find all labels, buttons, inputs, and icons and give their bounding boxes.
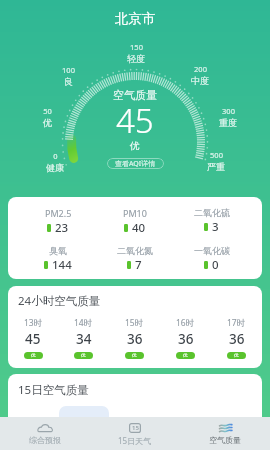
staticText: 16时 bbox=[176, 317, 195, 329]
staticText: 一氧化碳 bbox=[194, 245, 230, 256]
button[interactable]: 综合预报 bbox=[0, 417, 90, 450]
staticText: 17时 bbox=[227, 317, 246, 329]
staticText: 36 bbox=[127, 330, 143, 348]
staticText: 40 bbox=[132, 220, 146, 236]
staticText: 15日空气质量 bbox=[18, 382, 89, 398]
staticText: 13时 bbox=[24, 317, 43, 329]
staticText: 23 bbox=[55, 220, 69, 236]
staticText: 3 bbox=[212, 219, 219, 235]
staticText: 臭氧 bbox=[49, 245, 67, 256]
staticText: 150 bbox=[130, 42, 143, 52]
staticText: 优 bbox=[130, 140, 140, 152]
button[interactable]: 空气质量 bbox=[180, 417, 270, 450]
button[interactable]: 17时 bbox=[211, 317, 262, 359]
staticText: 500 bbox=[210, 150, 223, 160]
staticText: 综合预报 bbox=[29, 435, 61, 445]
staticText: 144 bbox=[52, 257, 72, 273]
staticText: 0 bbox=[212, 257, 219, 273]
staticText: 轻度 bbox=[127, 53, 145, 64]
staticText: 15 bbox=[132, 424, 139, 432]
staticText: 45 bbox=[116, 98, 154, 143]
staticText: 优 bbox=[132, 353, 137, 359]
staticText: 空气质量 bbox=[113, 88, 157, 102]
staticText: 空气质量 bbox=[209, 435, 241, 445]
staticText: 14时 bbox=[74, 317, 93, 329]
staticText: 严重 bbox=[207, 161, 225, 172]
staticText: 50 bbox=[43, 106, 52, 116]
button[interactable]: 15日天气 bbox=[90, 417, 180, 450]
staticText: 300 bbox=[222, 106, 235, 116]
staticText: 北京市 bbox=[115, 10, 156, 27]
staticText: 健康 bbox=[46, 162, 64, 173]
staticText: 200 bbox=[194, 64, 207, 74]
staticText: 重度 bbox=[219, 117, 237, 128]
staticText: 优 bbox=[31, 353, 36, 359]
staticText: 7 bbox=[135, 257, 142, 273]
staticText: 优 bbox=[234, 353, 239, 359]
staticText: 34 bbox=[76, 330, 92, 348]
staticText: 优 bbox=[183, 353, 188, 359]
staticText: 二氧化氮 bbox=[117, 245, 153, 256]
staticText: 优 bbox=[43, 117, 52, 128]
staticText: 45 bbox=[25, 330, 41, 348]
staticText: 15日天气 bbox=[118, 435, 152, 446]
staticText: 0 bbox=[53, 151, 58, 161]
button[interactable]: 15时 bbox=[109, 317, 160, 359]
staticText: 100 bbox=[62, 65, 75, 75]
staticText: 36 bbox=[178, 330, 194, 348]
staticText: 36 bbox=[229, 330, 245, 348]
staticText: 查看AQI详情 bbox=[115, 159, 156, 169]
staticText: PM10 bbox=[123, 207, 147, 219]
staticText: 15时 bbox=[125, 317, 144, 329]
staticText: 良 bbox=[64, 76, 73, 87]
staticText: 优 bbox=[81, 353, 86, 359]
button[interactable]: 13时 bbox=[8, 317, 58, 359]
staticText: 中度 bbox=[191, 75, 209, 86]
staticText: 24小时空气质量 bbox=[18, 293, 101, 309]
button[interactable]: 14时 bbox=[58, 317, 109, 359]
staticText: 二氧化硫 bbox=[194, 207, 230, 218]
button[interactable]: 16时 bbox=[160, 317, 211, 359]
button[interactable]: 查看AQI详情 bbox=[107, 158, 164, 169]
staticText: PM2.5 bbox=[45, 207, 72, 219]
